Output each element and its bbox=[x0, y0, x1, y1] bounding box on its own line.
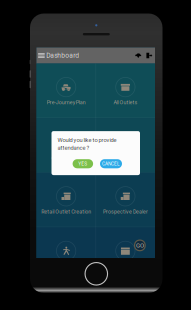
button[interactable]: Market Working bbox=[36, 227, 96, 282]
button[interactable]: CANCEL bbox=[100, 159, 122, 168]
button[interactable]: Journey Plan bbox=[36, 118, 96, 173]
staticText: CANCEL bbox=[102, 161, 120, 166]
button[interactable]: Retail Outlet Creation bbox=[36, 173, 96, 227]
button[interactable]: Log out bbox=[143, 47, 155, 63]
staticText: Would you like to provide bbox=[57, 137, 116, 143]
staticText: Pre-Journey Plan bbox=[47, 99, 86, 105]
staticText: GO bbox=[136, 242, 144, 249]
button[interactable]: All Outlets bbox=[96, 63, 155, 118]
staticText: Journey Plan bbox=[51, 154, 81, 160]
button[interactable]: Sync bbox=[133, 47, 143, 63]
staticText: Dashboard bbox=[46, 52, 79, 59]
button[interactable]: Daily Reports bbox=[96, 227, 155, 282]
button[interactable]: Menu bbox=[36, 47, 46, 63]
staticText: attendance ? bbox=[57, 144, 89, 151]
button[interactable]: Attendance bbox=[96, 118, 155, 173]
staticText: YES bbox=[78, 161, 87, 166]
staticText: All Outlets bbox=[113, 99, 137, 105]
staticText: Attendance bbox=[111, 154, 139, 160]
staticText: Retail Outlet Creation bbox=[41, 208, 91, 215]
button[interactable]: YES bbox=[73, 159, 93, 168]
button[interactable]: Prospective Dealer bbox=[96, 173, 155, 227]
button[interactable]: Pre-Journey Plan bbox=[36, 63, 96, 118]
staticText: Prospective Dealer bbox=[103, 208, 148, 215]
